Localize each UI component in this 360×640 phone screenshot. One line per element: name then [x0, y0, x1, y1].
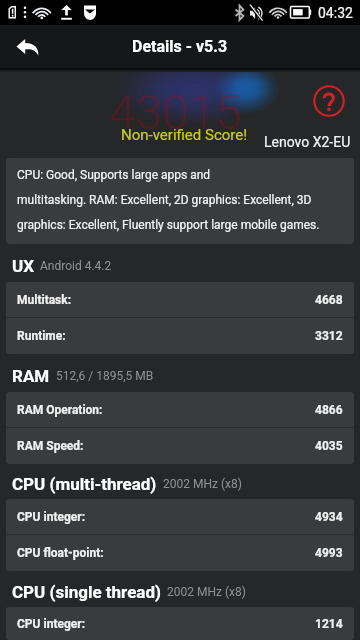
button[interactable]: CPU float-point:	[6, 535, 354, 571]
button[interactable]: RAM Speed:	[6, 428, 354, 464]
staticText: 43015	[109, 84, 243, 140]
staticText: 1214	[315, 617, 343, 631]
staticText: Details - v5.3	[132, 37, 228, 56]
staticText: RAM	[12, 366, 50, 386]
button[interactable]: Help	[309, 81, 348, 120]
staticText: CPU integer:	[17, 510, 86, 524]
button[interactable]: Back	[0, 25, 54, 68]
staticText: Android 4.4.2	[40, 259, 112, 273]
staticText: 2002 MHz (x8)	[163, 477, 242, 491]
staticText: CPU float-point:	[17, 546, 104, 560]
button[interactable]: CPU: Good, Supports large apps and	[6, 158, 354, 244]
staticText: UX	[12, 256, 34, 276]
staticText: 512,6 / 1895,5 MB	[56, 369, 154, 383]
staticText: 2002 MHz (x8)	[167, 585, 246, 599]
staticText: Multitask:	[17, 293, 72, 307]
staticText: 3312	[315, 329, 343, 343]
staticText: RAM Operation:	[17, 403, 103, 417]
button[interactable]: Multitask:	[6, 282, 354, 317]
staticText: Lenovo X2-EU	[264, 134, 351, 150]
staticText: CPU (single thread)	[12, 582, 161, 602]
staticText: CPU: Good, Supports large apps and	[17, 168, 211, 182]
button[interactable]: RAM Operation:	[6, 392, 354, 427]
staticText: 04:32	[318, 5, 353, 21]
staticText: 4866	[315, 403, 343, 417]
button[interactable]: CPU integer:	[6, 499, 354, 534]
staticText: CPU (multi-thread)	[12, 474, 157, 494]
staticText: CPU integer:	[17, 617, 86, 631]
staticText: 4668	[315, 293, 343, 307]
staticText: multitasking. RAM: Excellent, 2D graphic…	[17, 193, 312, 207]
staticText: Runtime:	[17, 329, 66, 343]
staticText: 4035	[315, 439, 343, 453]
staticText: RAM Speed:	[17, 439, 84, 453]
staticText: Non-verified Score!	[121, 126, 248, 144]
staticText: 4934	[315, 510, 343, 524]
button[interactable]: Runtime:	[6, 318, 354, 354]
staticText: graphics: Excellent, Fluently support la…	[17, 218, 320, 232]
staticText: 4993	[315, 546, 343, 560]
button[interactable]: CPU integer:	[6, 607, 354, 640]
